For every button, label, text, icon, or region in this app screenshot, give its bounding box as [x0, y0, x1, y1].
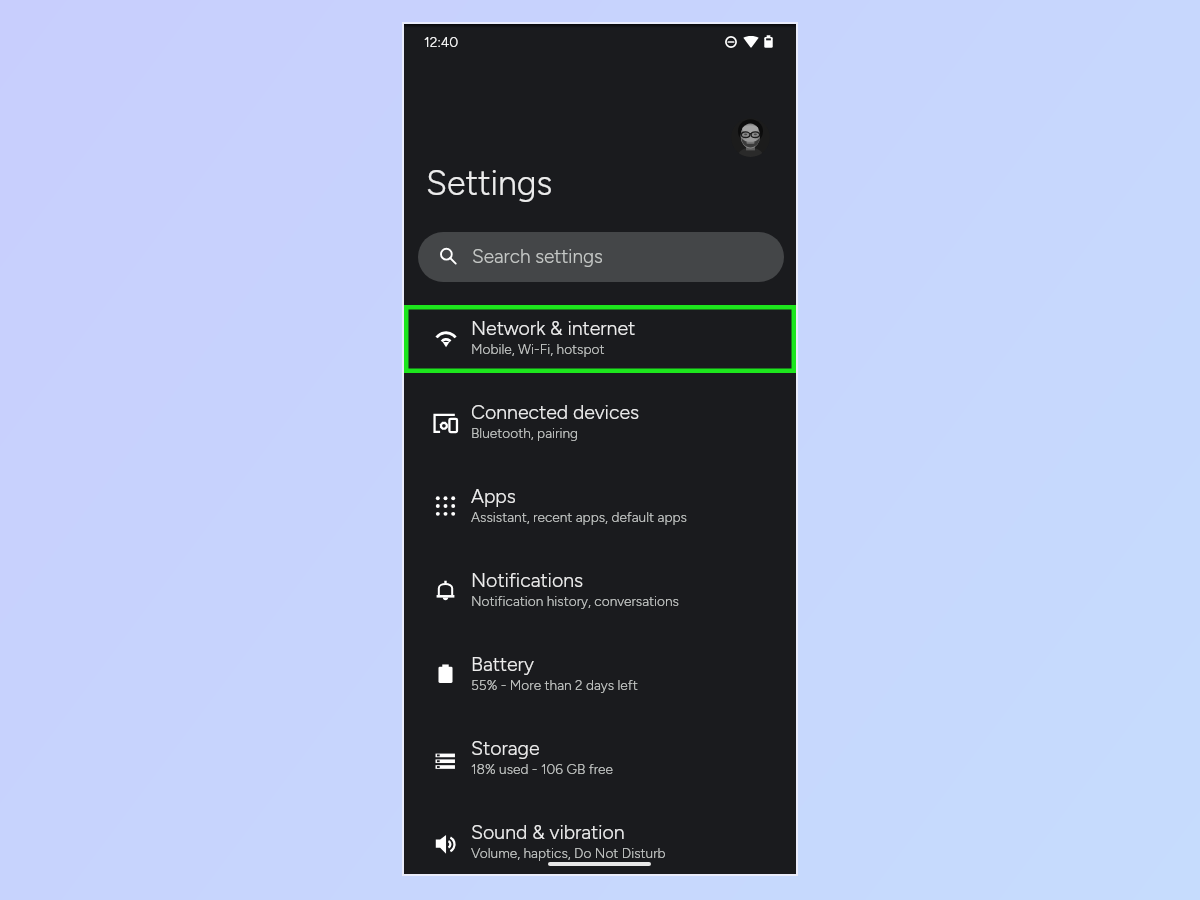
staticText: Assistant, recent apps, default apps	[471, 509, 687, 525]
button[interactable]: Network & internet	[404, 294, 796, 378]
button[interactable]: Apps	[404, 462, 796, 546]
button[interactable]: Connected devices	[404, 378, 796, 462]
staticText: 18% used - 106 GB free	[471, 761, 613, 777]
staticText: Settings	[426, 163, 553, 204]
button[interactable]: Sound & vibration	[404, 798, 796, 882]
staticText: Network & internet	[471, 316, 636, 339]
staticText: 12:40	[424, 34, 459, 51]
staticText: Notifications	[471, 568, 584, 591]
staticText: Notification history, conversations	[471, 593, 679, 609]
staticText: Sound & vibration	[471, 820, 625, 843]
button[interactable]: Battery	[404, 630, 796, 714]
staticText: Storage	[471, 736, 540, 759]
staticText: Apps	[471, 484, 516, 507]
staticText: Mobile, Wi-Fi, hotspot	[471, 341, 605, 357]
staticText: Search settings	[472, 245, 603, 268]
button[interactable]: Account and settings profile	[731, 118, 770, 157]
button[interactable]: Search settings	[418, 232, 784, 282]
staticText: Connected devices	[471, 400, 640, 423]
button[interactable]: Notifications	[404, 546, 796, 630]
button[interactable]: Storage	[404, 714, 796, 798]
staticText: Volume, haptics, Do Not Disturb	[471, 845, 666, 861]
staticText: Bluetooth, pairing	[471, 425, 578, 441]
staticText: 55% - More than 2 days left	[471, 677, 638, 693]
staticText: Battery	[471, 652, 534, 675]
